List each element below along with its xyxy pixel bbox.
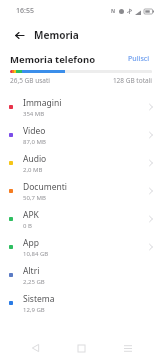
staticText: 2,0 MB bbox=[23, 166, 43, 174]
button[interactable]: Documenti bbox=[0, 177, 162, 205]
button[interactable]: Video bbox=[0, 121, 162, 149]
staticText: 354 MB bbox=[23, 110, 45, 118]
staticText: Memoria bbox=[34, 28, 79, 42]
staticText: 0 B bbox=[23, 222, 32, 230]
button[interactable]: APK bbox=[0, 205, 162, 233]
button[interactable]: App bbox=[0, 233, 162, 261]
staticText: Altri bbox=[23, 265, 40, 277]
staticText: 50,7 MB bbox=[23, 194, 46, 202]
button[interactable]: Pulisci bbox=[126, 52, 152, 66]
button[interactable]: Recenti bbox=[116, 336, 140, 360]
staticText: Sistema bbox=[23, 293, 55, 305]
staticText: 128 GB totali bbox=[112, 76, 152, 85]
button[interactable]: Indietro bbox=[10, 26, 28, 44]
staticText: N bbox=[111, 8, 116, 15]
staticText: Documenti bbox=[23, 181, 67, 193]
button[interactable]: Altri bbox=[0, 261, 162, 289]
staticText: Audio bbox=[23, 153, 47, 165]
staticText: 16:55 bbox=[16, 6, 34, 16]
button[interactable]: Home bbox=[69, 336, 93, 360]
staticText: 26,5 GB usati bbox=[10, 76, 51, 85]
staticText: 12,9 GB bbox=[23, 306, 45, 314]
staticText: Immagini bbox=[23, 97, 62, 109]
button[interactable]: Sistema bbox=[0, 289, 162, 317]
staticText: Video bbox=[23, 125, 46, 137]
staticText: 87,0 MB bbox=[23, 138, 46, 146]
staticText: 2,25 GB bbox=[23, 278, 45, 286]
staticText: 10,84 GB bbox=[23, 250, 49, 258]
staticText: Pulisci bbox=[128, 54, 150, 64]
button[interactable]: Immagini bbox=[0, 93, 162, 121]
staticText: Memoria telefono bbox=[10, 53, 96, 66]
staticText: App bbox=[23, 237, 39, 249]
staticText: APK bbox=[23, 209, 39, 221]
button[interactable]: Indietro bbox=[23, 336, 47, 360]
button[interactable]: Audio bbox=[0, 149, 162, 177]
